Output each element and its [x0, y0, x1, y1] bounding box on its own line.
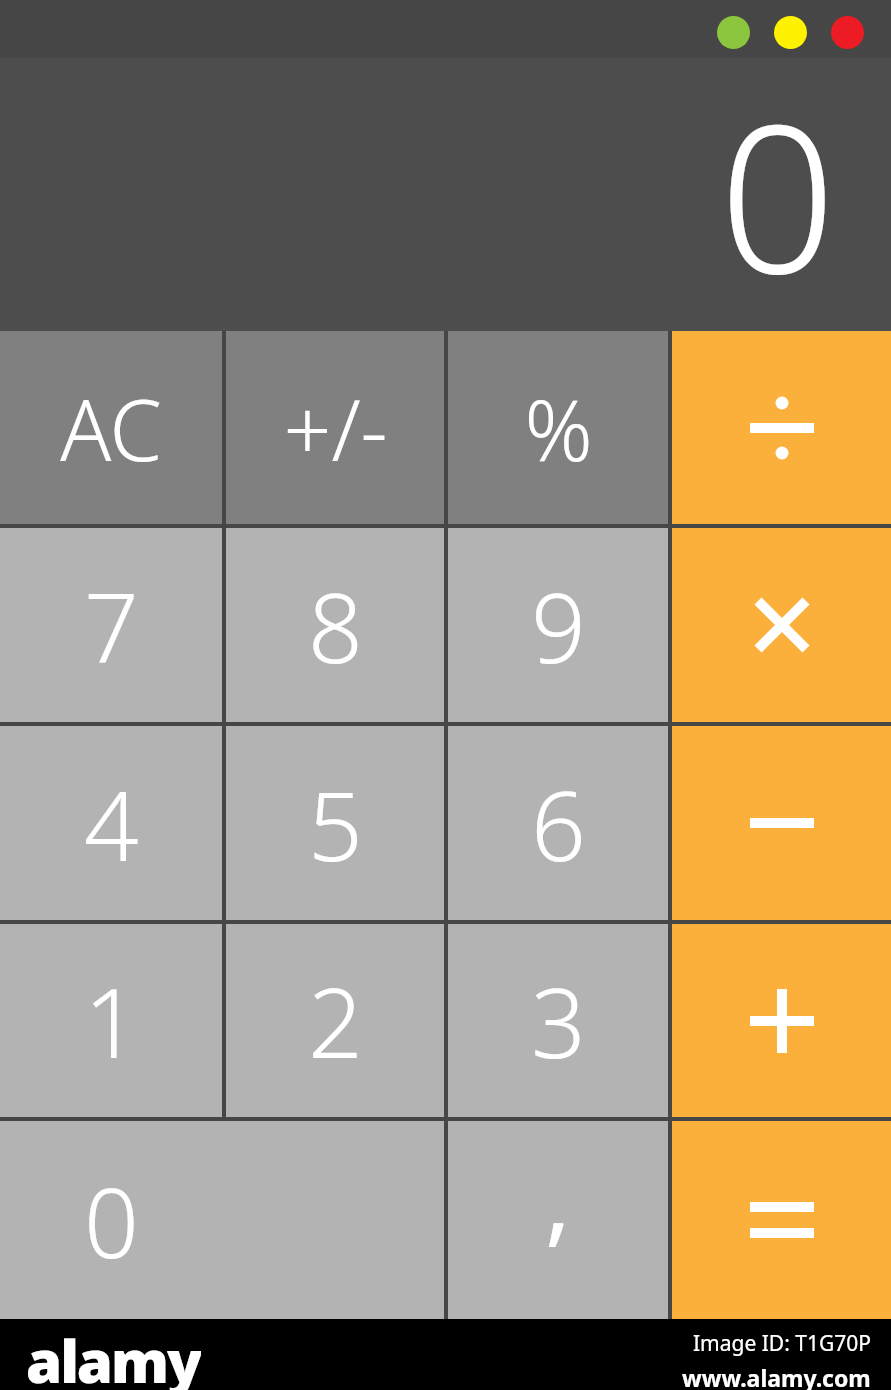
button[interactable]: 6 [448, 726, 668, 920]
staticText: www.alamy.com [682, 1362, 871, 1390]
staticText: 0 [84, 1155, 139, 1286]
staticText: 7 [84, 560, 139, 691]
staticText: 4 [84, 758, 139, 889]
staticText: 8 [308, 560, 363, 691]
button[interactable]: Close window [831, 16, 864, 49]
button[interactable]: 7 [0, 528, 222, 722]
button[interactable]: , [448, 1121, 668, 1319]
button[interactable]: Subtract [672, 726, 891, 920]
button[interactable]: 4 [0, 726, 222, 920]
button[interactable]: 9 [448, 528, 668, 722]
button[interactable]: Add [672, 924, 891, 1117]
button[interactable]: 5 [226, 726, 444, 920]
staticText: , [545, 1131, 571, 1262]
staticText: +/- [283, 371, 388, 485]
button[interactable]: Maximize window [774, 16, 807, 49]
staticText: 2 [308, 955, 363, 1086]
staticText: AC [60, 371, 162, 485]
button[interactable]: % [448, 331, 668, 524]
staticText: Image ID: T1G70P [693, 1329, 871, 1358]
button[interactable]: 1 [0, 924, 222, 1117]
button[interactable]: 0 [0, 1121, 444, 1319]
button[interactable]: Minimize window [717, 16, 750, 49]
staticText: alamy [26, 1321, 201, 1390]
staticText: 5 [308, 758, 363, 889]
button[interactable]: +/- [226, 331, 444, 524]
staticText: % [524, 371, 593, 485]
staticText: 9 [531, 560, 586, 691]
button[interactable]: Equals [672, 1121, 891, 1319]
button[interactable]: 2 [226, 924, 444, 1117]
button[interactable]: Divide [672, 331, 891, 524]
button[interactable]: AC [0, 331, 222, 524]
button[interactable]: Multiply [672, 528, 891, 722]
button[interactable]: 8 [226, 528, 444, 722]
button[interactable]: 3 [448, 924, 668, 1117]
staticText: 6 [531, 758, 586, 889]
staticText: 0 [719, 54, 837, 327]
staticText: 3 [531, 955, 586, 1086]
staticText: 1 [84, 955, 139, 1086]
